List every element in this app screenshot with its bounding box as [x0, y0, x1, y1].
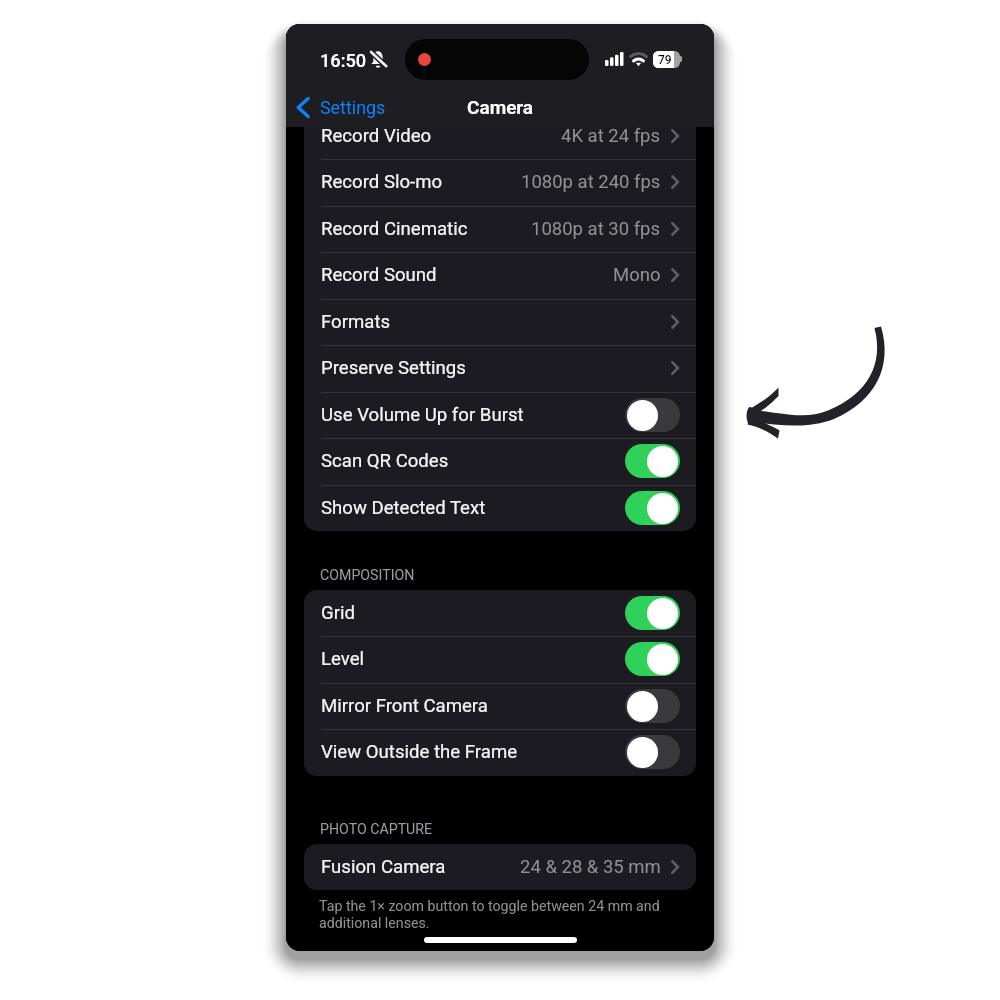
- button[interactable]: Record Cinematic: [304, 206, 696, 252]
- button[interactable]: Preserve Settings: [304, 345, 696, 391]
- staticText: 1080p at 240 fps: [521, 171, 661, 193]
- button[interactable]: Formats: [304, 299, 696, 345]
- button[interactable]: Off: [625, 689, 680, 723]
- staticText: Use Volume Up for Burst: [321, 404, 524, 426]
- staticText: Show Detected Text: [321, 497, 486, 519]
- staticText: Record Cinematic: [321, 218, 468, 240]
- staticText: Record Slo-mo: [321, 171, 443, 193]
- button[interactable]: Off: [625, 735, 680, 769]
- staticText: 79: [658, 53, 672, 67]
- staticText: Tap the 1× zoom button to toggle between…: [319, 898, 684, 932]
- staticText: Mono: [613, 264, 661, 286]
- staticText: Camera: [467, 96, 534, 118]
- staticText: 16:50: [320, 50, 367, 71]
- button[interactable]: Off: [625, 398, 680, 432]
- button[interactable]: Use Volume Up for Burst: [304, 392, 696, 438]
- staticText: Record Video: [321, 125, 432, 147]
- button[interactable]: Back to Settings: [297, 87, 386, 127]
- staticText: Level: [321, 648, 365, 670]
- button[interactable]: Level: [304, 636, 696, 682]
- staticText: COMPOSITION: [320, 567, 415, 584]
- button[interactable]: Mirror Front Camera: [304, 683, 696, 729]
- staticText: 1080p at 30 fps: [531, 218, 661, 240]
- button[interactable]: Fusion Camera: [304, 844, 696, 890]
- button[interactable]: Scan QR Codes: [304, 438, 696, 484]
- button[interactable]: On: [625, 642, 680, 676]
- staticText: 4K at 24 fps: [561, 125, 661, 147]
- button[interactable]: View Outside the Frame: [304, 729, 696, 775]
- staticText: Preserve Settings: [321, 357, 466, 379]
- staticText: View Outside the Frame: [321, 741, 518, 763]
- button[interactable]: Record Video: [304, 113, 696, 159]
- staticText: Settings: [320, 97, 386, 118]
- staticText: Record Sound: [321, 264, 437, 286]
- staticText: Mirror Front Camera: [321, 695, 488, 717]
- button[interactable]: Record Sound: [304, 252, 696, 298]
- button[interactable]: Record Slo-mo: [304, 159, 696, 205]
- staticText: Fusion Camera: [321, 856, 446, 878]
- button[interactable]: On: [625, 444, 680, 478]
- button[interactable]: Show Detected Text: [304, 485, 696, 531]
- staticText: Scan QR Codes: [321, 450, 449, 472]
- button[interactable]: Grid: [304, 590, 696, 636]
- staticText: Formats: [321, 311, 391, 333]
- button[interactable]: On: [625, 596, 680, 630]
- staticText: PHOTO CAPTURE: [320, 821, 433, 838]
- staticText: 24 & 28 & 35 mm: [520, 856, 661, 878]
- staticText: Grid: [321, 602, 355, 624]
- button[interactable]: On: [625, 491, 680, 525]
